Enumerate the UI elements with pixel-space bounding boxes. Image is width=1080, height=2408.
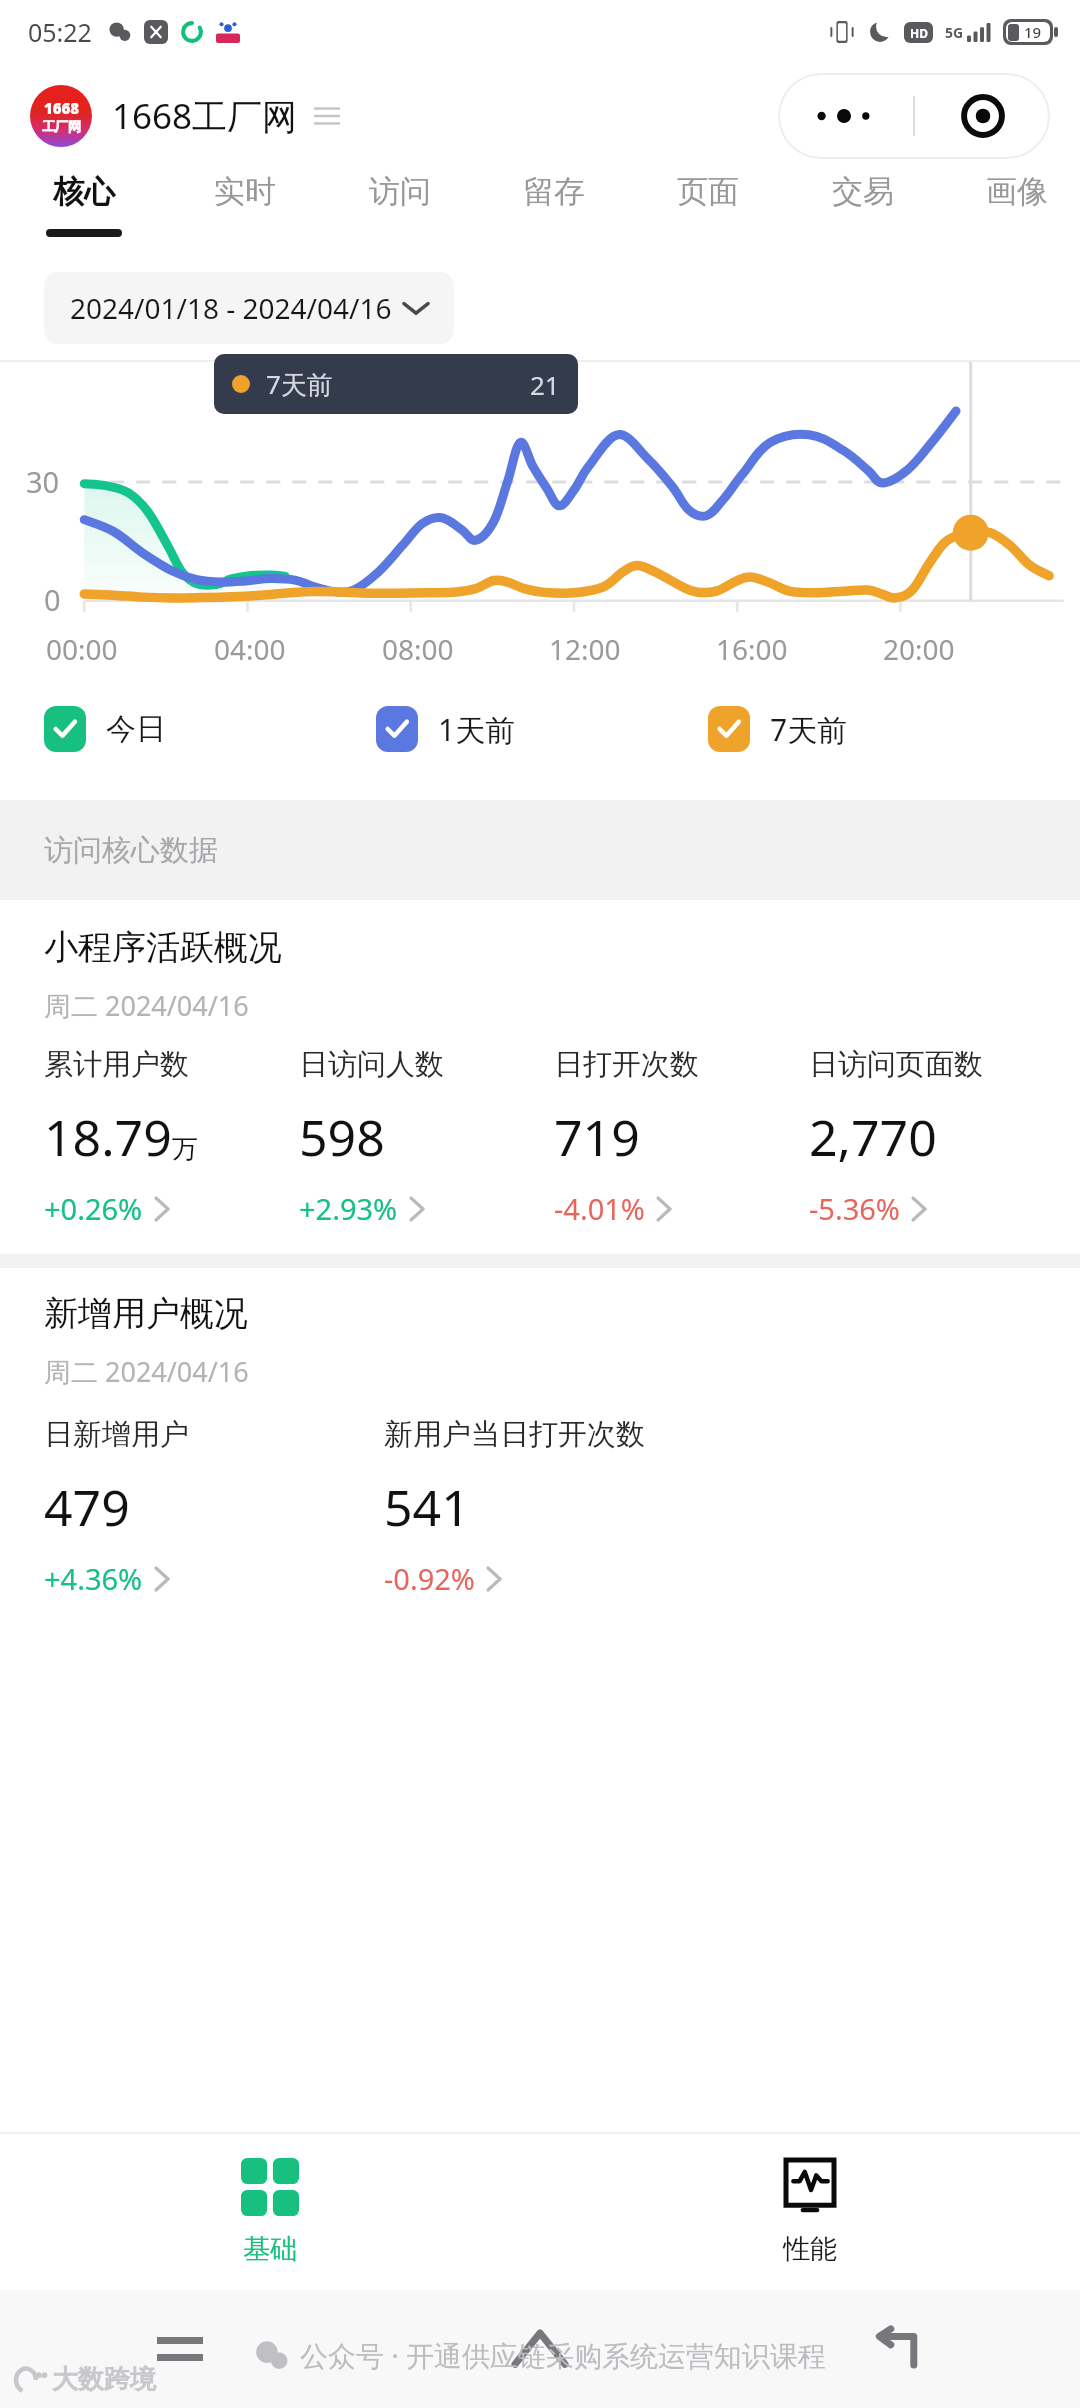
staticText: 2,770 [809,1103,937,1171]
staticText: 核心 [53,172,115,211]
staticText: 实时 [214,172,276,211]
staticText: 基础 [243,2232,297,2266]
button[interactable]: 访问 [363,168,437,229]
button[interactable]: 交易 [826,168,900,229]
staticText: 日新增用户 [44,1416,189,1453]
button[interactable]: 基础 [0,2134,540,2290]
staticText: -0.92% [384,1559,475,1598]
button[interactable]: 实时 [208,168,282,229]
staticText: 万 [172,1133,198,1166]
staticText: 访问 [369,172,431,211]
staticText: 598 [299,1103,385,1171]
staticText: 05:22 [28,15,92,49]
staticText: 2024/01/18 - 2024/04/16 [70,289,392,327]
button[interactable]: 累计用户数 [44,1046,299,1228]
staticText: 画像 [986,172,1048,211]
staticText: 1668工厂网 [112,92,298,140]
staticText: 日访问人数 [299,1046,444,1083]
button[interactable]: 日访问人数 [299,1046,554,1228]
button[interactable]: 关闭小程序 [915,73,1050,159]
staticText: 累计用户数 [44,1046,189,1083]
staticText: 周二 2024/04/16 [44,987,249,1024]
staticText: 18.79 [44,1103,172,1171]
staticText: 周二 2024/04/16 [44,1353,249,1390]
staticText: 541 [384,1473,470,1541]
staticText: 小程序活跃概况 [44,926,282,969]
staticText: 08:00 [382,630,454,668]
staticText: 新增用户概况 [44,1292,248,1335]
staticText: 30 [26,462,60,501]
staticText: 交易 [832,172,894,211]
button[interactable]: 核心 [40,168,128,237]
staticText: 7天前 [770,709,848,750]
staticText: 页面 [677,172,739,211]
staticText: 大数跨境 [52,2363,156,2396]
staticText: 479 [44,1473,130,1541]
staticText: 访问核心数据 [44,832,218,869]
staticText: -5.36% [809,1189,900,1228]
staticText: 今日 [106,710,166,748]
staticText: 留存 [523,172,585,211]
button[interactable]: 2024/01/18 - 2024/04/16 [44,272,454,344]
button[interactable]: 返回 [720,2290,1080,2408]
button[interactable]: 日打开次数 [554,1046,809,1228]
staticText: 16:00 [716,630,788,668]
staticText: 新用户当日打开次数 [384,1416,645,1453]
button[interactable]: 画像 [980,168,1054,229]
staticText: -4.01% [554,1189,645,1228]
button[interactable]: 日新增用户 [44,1416,384,1598]
staticText: 工厂网 [42,118,81,134]
button[interactable]: 日访问页面数 [809,1046,1064,1228]
staticText: 1668 [44,98,80,118]
staticText: 公众号 · 开通供应链采购系统运营知识课程 [300,2336,827,2374]
staticText: 日访问页面数 [809,1046,983,1083]
staticText: 0 [44,580,61,619]
button[interactable]: 今日 [44,706,376,752]
button[interactable]: 主屏幕 [360,2290,720,2408]
staticText: +0.26% [44,1189,143,1228]
button[interactable]: 新用户当日打开次数 [384,1416,724,1598]
button[interactable]: 留存 [517,168,591,229]
staticText: 性能 [783,2232,837,2266]
staticText: 7天前 [266,366,333,402]
button[interactable]: 页面 [671,168,745,229]
button[interactable]: 更多 [778,73,913,159]
button[interactable]: 7天前 [708,706,1040,752]
staticText: 1天前 [438,709,516,750]
staticText: 00:00 [46,630,118,668]
staticText: +2.93% [299,1189,398,1228]
button[interactable]: 最近任务 [0,2290,360,2408]
staticText: 日打开次数 [554,1046,699,1083]
button[interactable]: 1天前 [376,706,708,752]
staticText: +4.36% [44,1559,143,1598]
staticText: HD [910,25,928,41]
staticText: 19 [1024,22,1042,42]
staticText: 12:00 [549,630,621,668]
staticText: 21 [530,367,560,402]
staticText: 04:00 [214,630,286,668]
staticText: 5G [945,23,964,42]
button[interactable]: 性能 [540,2134,1080,2290]
staticText: 20:00 [883,630,955,668]
staticText: 719 [554,1103,640,1171]
